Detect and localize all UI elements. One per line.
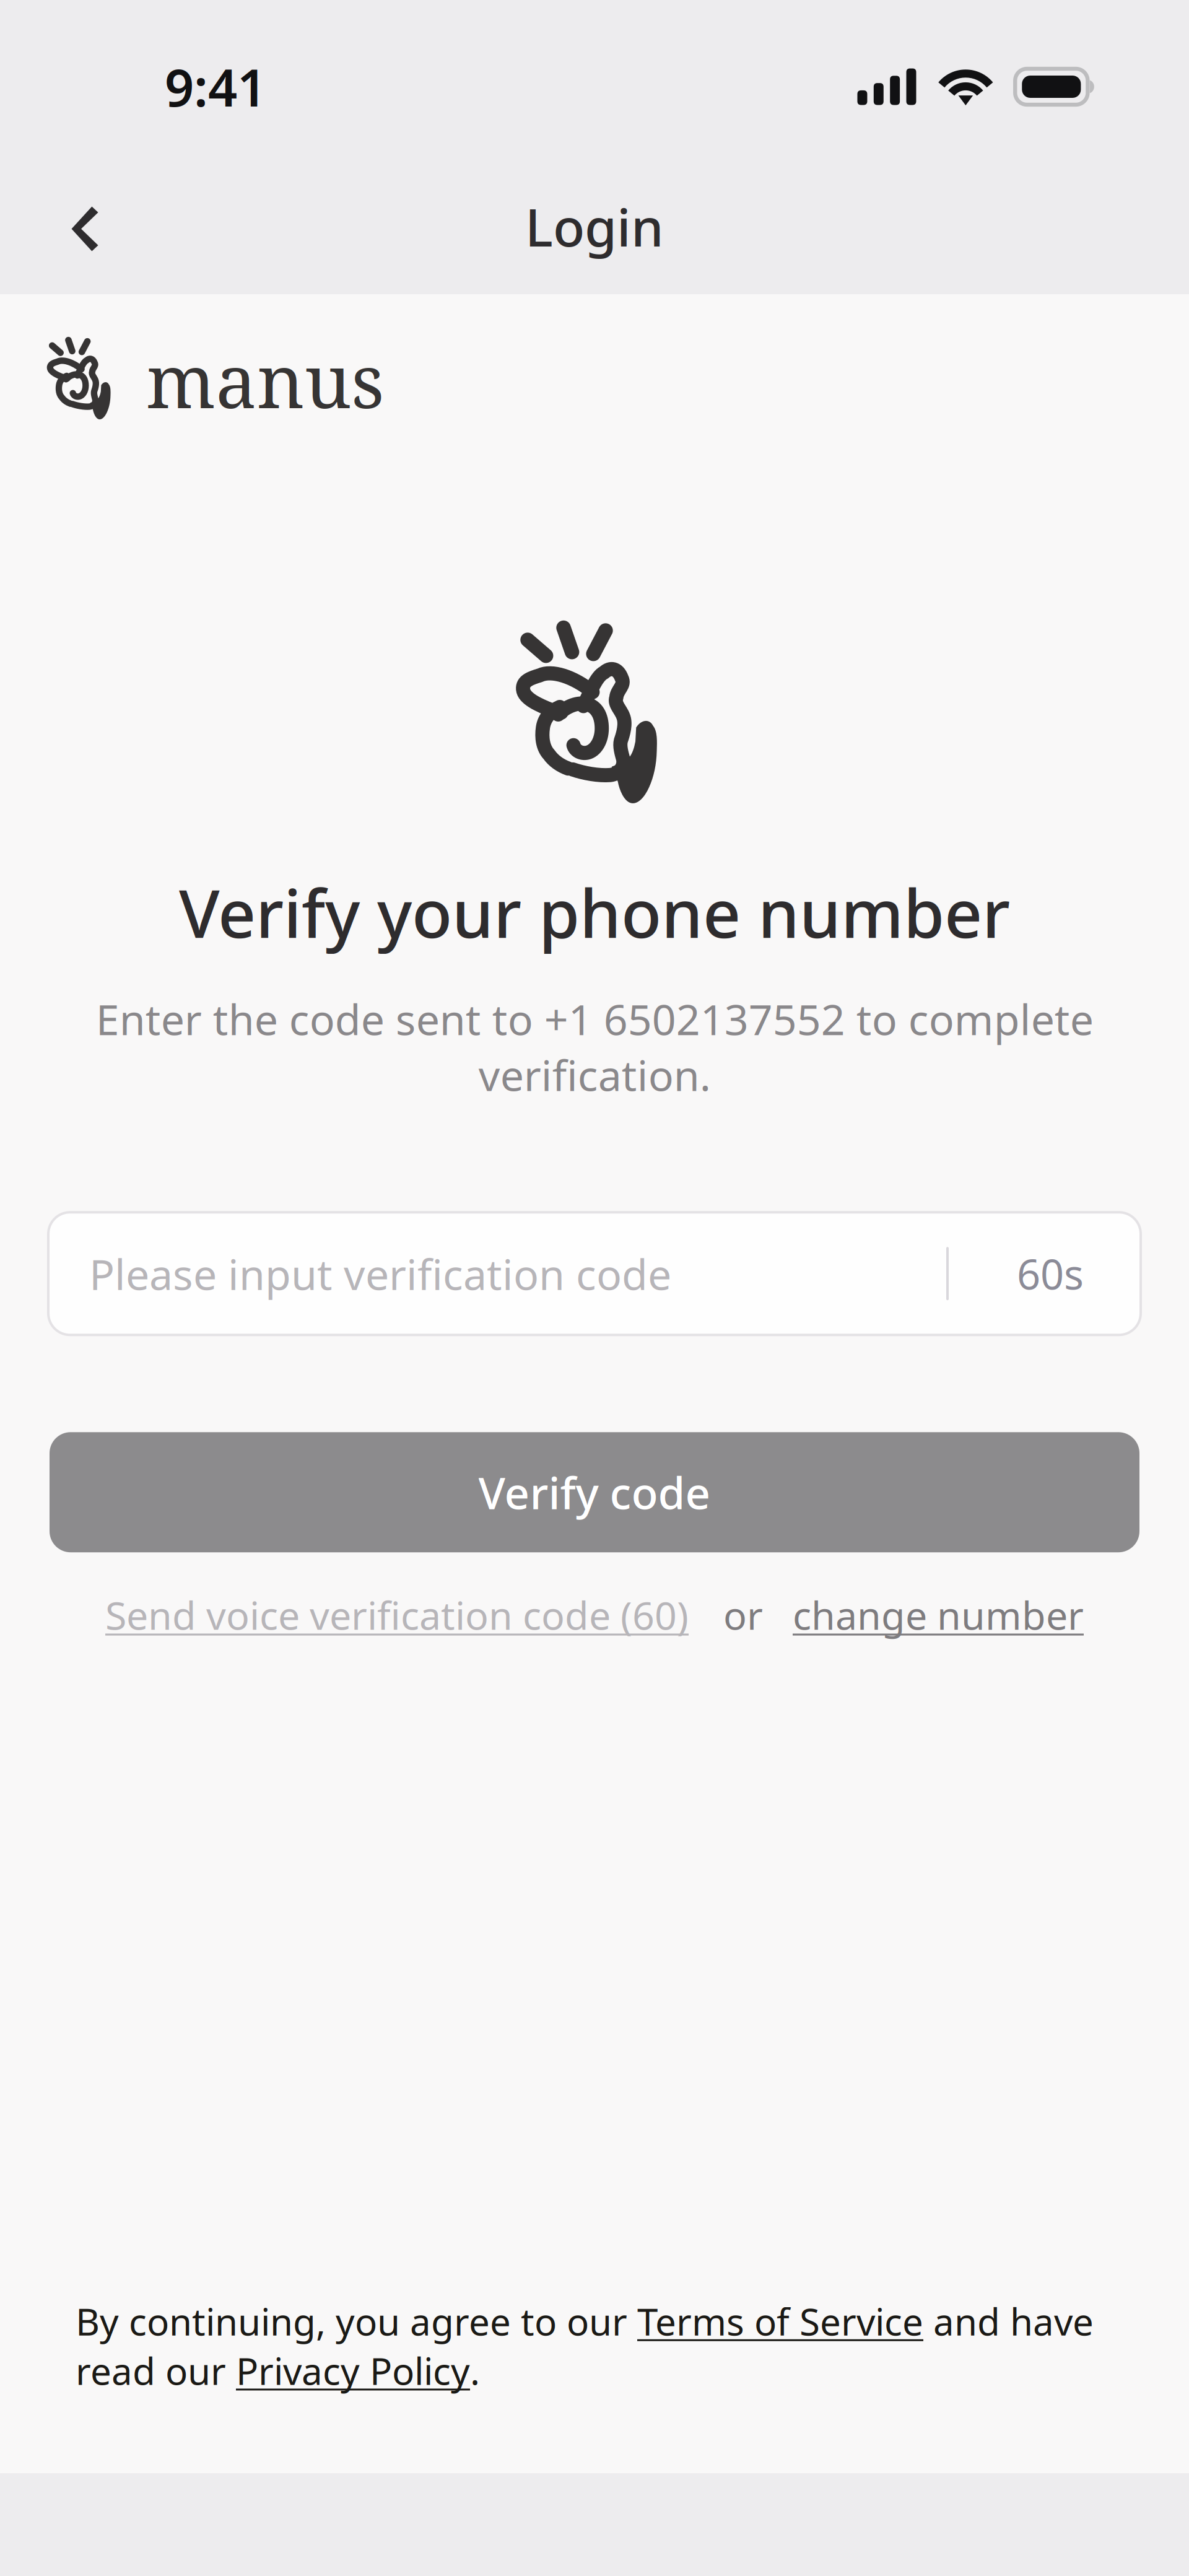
staticText: Verify code <box>478 1463 711 1521</box>
staticText: Login <box>525 192 664 261</box>
staticText: change number <box>793 1589 1084 1640</box>
staticText: 60s <box>1017 1246 1084 1301</box>
staticText: Please input verification code <box>89 1246 671 1302</box>
staticText: By continuing, you agree to our Terms of… <box>76 2296 1094 2395</box>
staticText: Enter the code sent to +1 6502137552 to … <box>96 991 1093 1103</box>
button[interactable]: Verify code <box>50 1432 1139 1552</box>
staticText: Verify your phone number <box>179 868 1010 956</box>
staticText: manus <box>146 330 385 430</box>
button[interactable]: change number <box>793 1589 1084 1640</box>
staticText: 9:41 <box>165 53 266 121</box>
staticText: or <box>723 1589 763 1640</box>
staticText: Send voice verification code (60) <box>105 1589 689 1640</box>
button[interactable]: Back <box>45 189 125 269</box>
button[interactable]: Send voice verification code (60) <box>105 1589 689 1640</box>
